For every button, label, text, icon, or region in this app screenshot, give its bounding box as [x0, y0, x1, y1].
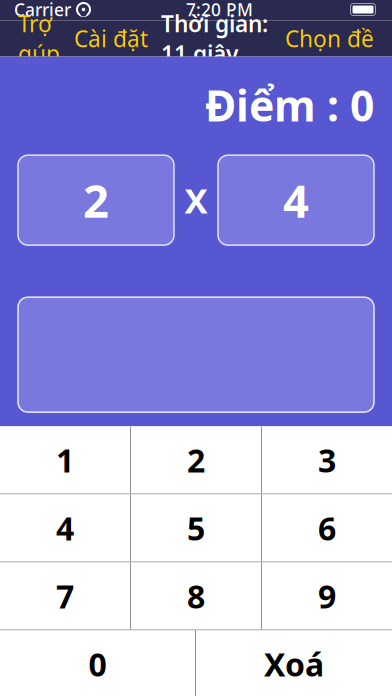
staticText: 2: [187, 439, 205, 481]
staticText: X: [184, 177, 207, 223]
button[interactable]: 9: [262, 562, 392, 629]
button[interactable]: 2: [131, 426, 261, 493]
staticText: 4: [283, 170, 309, 230]
staticText: 7: [56, 575, 74, 617]
button[interactable]: Trợ gúp: [14, 2, 64, 75]
staticText: 7:20 PM: [186, 0, 253, 21]
staticText: 0: [88, 643, 106, 685]
staticText: Thời gian: 11 giây: [161, 8, 268, 69]
staticText: Xoá: [264, 643, 324, 685]
button[interactable]: 6: [262, 494, 392, 561]
button[interactable]: Cài đặt: [70, 17, 152, 59]
button[interactable]: 8: [131, 562, 261, 629]
staticText: 3: [318, 439, 336, 481]
staticText: 5: [187, 507, 205, 549]
button[interactable]: 1: [0, 426, 130, 493]
button[interactable]: Chọn đề: [281, 17, 378, 59]
staticText: 1: [56, 439, 74, 481]
button[interactable]: 3: [262, 426, 392, 493]
button[interactable]: 4: [0, 494, 130, 561]
staticText: Điểm : 0: [205, 76, 374, 133]
button[interactable]: 0: [0, 630, 195, 696]
staticText: Trợ gúp: [18, 8, 60, 69]
staticText: 8: [187, 575, 205, 617]
staticText: 4: [56, 507, 74, 549]
staticText: 9: [318, 575, 336, 617]
staticText: 2: [83, 170, 109, 230]
staticText: Carrier: [14, 0, 71, 21]
staticText: Chọn đề: [285, 23, 374, 53]
button[interactable]: 7: [0, 562, 130, 629]
button[interactable]: Xoá: [196, 630, 392, 696]
staticText: 6: [318, 507, 336, 549]
staticText: Cài đặt: [74, 23, 148, 53]
button[interactable]: 5: [131, 494, 261, 561]
